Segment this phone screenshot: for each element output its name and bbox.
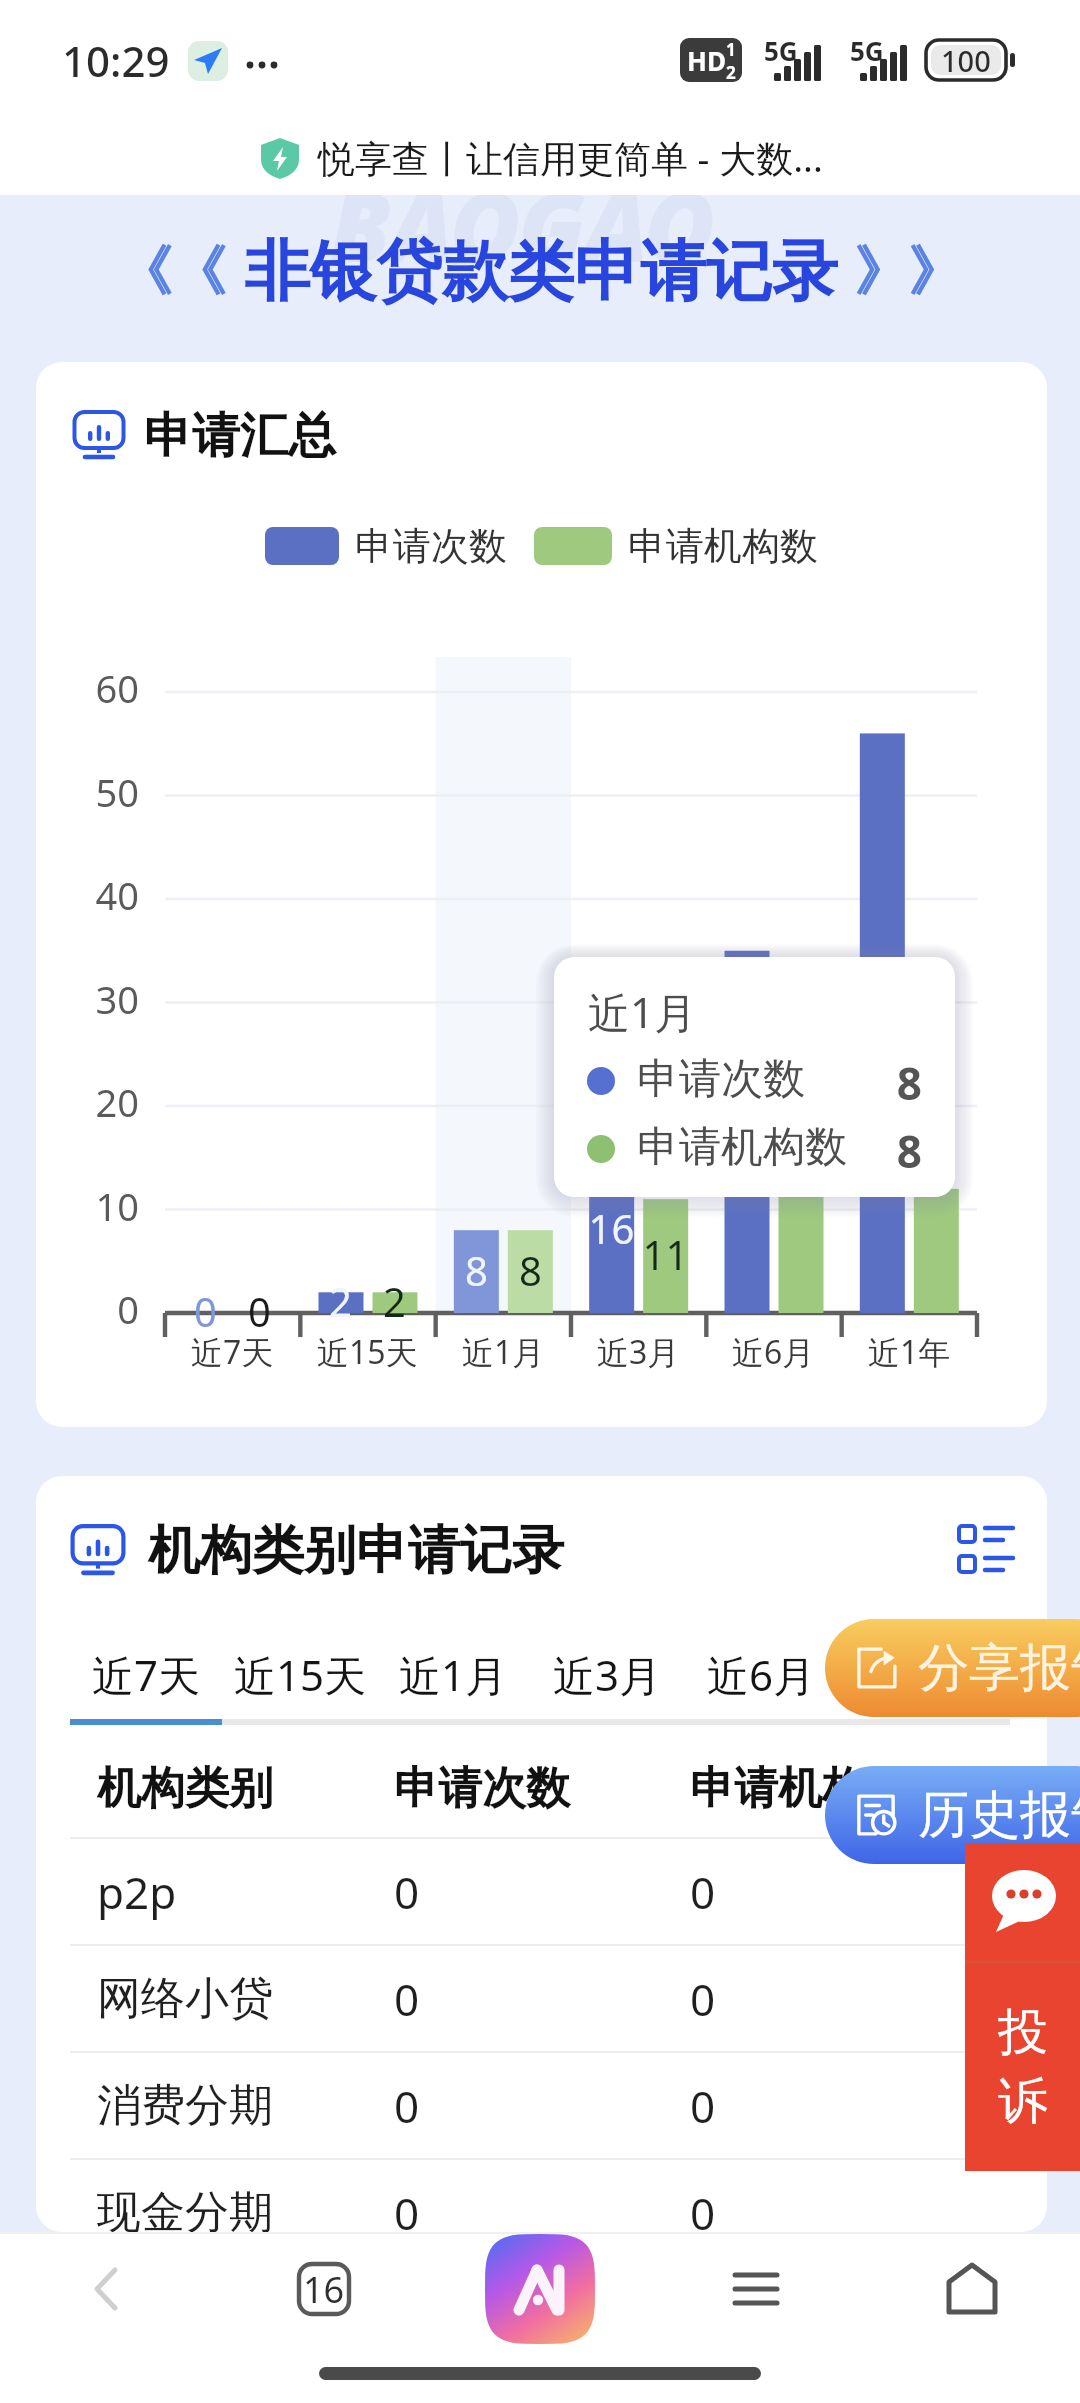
button[interactable]: 历史报告	[825, 1766, 1080, 1864]
staticText: 现金分期	[97, 2185, 394, 2232]
staticText: 2	[726, 61, 736, 82]
staticText: 申请机构数	[637, 1121, 847, 1174]
button[interactable]: 列表视图	[955, 1520, 1017, 1582]
staticText: 近1月	[588, 983, 697, 1040]
staticText: BAOGAO	[330, 195, 714, 290]
button[interactable]: 返回	[0, 2234, 216, 2344]
staticText: 申请机构数	[690, 1761, 910, 1816]
staticText: 0	[221, 1284, 298, 1338]
staticText: 8	[870, 1121, 922, 1181]
staticText: 16	[573, 1201, 650, 1255]
staticText: 申请次数	[355, 522, 507, 570]
staticText: 悦享查丨让信用更简单 - 大数...	[318, 132, 823, 183]
staticText: 10:29	[62, 32, 170, 89]
staticText: 诉	[998, 2070, 1048, 2133]
staticText: 0	[394, 2183, 690, 2232]
staticText: 分享报告	[918, 1636, 1080, 1700]
staticText: 近15天	[317, 1330, 418, 1374]
staticText: 10	[36, 1180, 139, 1232]
staticText: 消费分期	[97, 2078, 394, 2133]
staticText: 近1年	[868, 1330, 951, 1374]
button[interactable]: 近7天	[69, 1633, 224, 1715]
staticText: 100	[941, 41, 991, 80]
staticText: 近1月	[399, 1646, 508, 1703]
staticText: 40	[36, 869, 139, 921]
staticText: 近3月	[553, 1646, 662, 1703]
button[interactable]: 现金分期	[97, 2160, 1047, 2232]
staticText: 0	[394, 2076, 690, 2136]
button[interactable]: 分享报告	[825, 1619, 1080, 1717]
button[interactable]: 消费分期	[97, 2053, 1047, 2158]
button[interactable]: 在线客服	[965, 1843, 1080, 1961]
staticText: 8	[438, 1243, 515, 1297]
staticText: 非银贷款类申请记录	[244, 230, 838, 313]
button[interactable]: 主页	[864, 2234, 1080, 2344]
staticText: 0	[690, 2183, 716, 2232]
staticText: 近6月	[707, 1646, 816, 1703]
staticText: 0	[690, 1862, 716, 1922]
staticText: 申请次数	[637, 1053, 805, 1106]
staticText: 0	[690, 2076, 716, 2136]
staticText: 0	[394, 1969, 690, 2029]
staticText: 投	[998, 2001, 1048, 2064]
staticText: 50	[36, 766, 139, 818]
staticText: HD	[687, 43, 726, 78]
button[interactable]: 标签页	[216, 2234, 432, 2344]
button[interactable]: 近6月	[684, 1633, 839, 1715]
button[interactable]: 近15天	[223, 1633, 378, 1715]
button[interactable]: AI 助手	[432, 2234, 648, 2344]
staticText: 16	[303, 2265, 345, 2314]
button[interactable]: 菜单	[648, 2234, 864, 2344]
staticText: 8	[870, 1053, 922, 1113]
staticText: 30	[36, 973, 139, 1025]
button[interactable]: 网络小贷	[97, 1946, 1047, 2051]
staticText: 近3月	[597, 1330, 680, 1374]
button[interactable]: 近1月	[376, 1633, 531, 1715]
staticText: p2p	[97, 1862, 394, 1922]
staticText: 近6月	[732, 1330, 815, 1374]
staticText: 2	[302, 1274, 379, 1328]
staticText: 网络小贷	[97, 1971, 394, 2026]
staticText: 5G	[764, 33, 798, 68]
button[interactable]: 近3月	[530, 1633, 685, 1715]
staticText: 申请汇总	[144, 406, 336, 466]
staticText: 11	[627, 1227, 704, 1281]
staticText: 机构类别	[97, 1761, 394, 1816]
staticText: 申请机构数	[628, 522, 818, 570]
staticText: 》》	[854, 238, 962, 306]
staticText: 近1月	[462, 1330, 545, 1374]
staticText: 0	[394, 1862, 690, 1922]
staticText: 60	[36, 662, 139, 714]
staticText: 近15天	[234, 1646, 367, 1703]
staticText: 历史报告	[918, 1783, 1080, 1847]
staticText: 2	[356, 1274, 433, 1328]
staticText: 5G	[850, 33, 884, 68]
button[interactable]: 投	[965, 1963, 1080, 2171]
staticText: 0	[167, 1284, 244, 1338]
button[interactable]: p2p	[97, 1839, 1047, 1944]
staticText: 机构类别申请记录	[148, 1518, 564, 1584]
staticText: 申请次数	[394, 1761, 690, 1816]
staticText: 8	[492, 1243, 569, 1297]
staticText: 《《	[118, 238, 226, 306]
staticText: 近7天	[92, 1646, 201, 1703]
staticText: 近7天	[191, 1330, 274, 1374]
staticText: 20	[36, 1076, 139, 1128]
staticText: 1	[726, 38, 736, 61]
staticText: 0	[36, 1283, 139, 1335]
staticText: 0	[690, 1969, 716, 2029]
